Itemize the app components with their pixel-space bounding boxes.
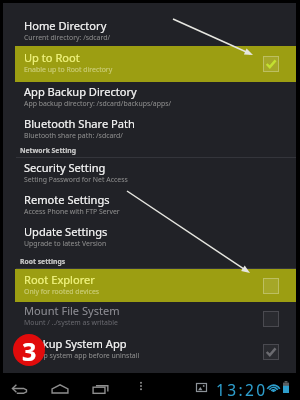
button[interactable]: Bluetooth Share Path xyxy=(15,113,296,144)
staticText: Only for rooted devices xyxy=(24,287,100,296)
button[interactable]: Security Setting xyxy=(15,158,296,189)
button[interactable]: Home xyxy=(48,377,72,400)
staticText: Enable up to Root directory xyxy=(24,65,113,74)
staticText: Access Phone with FTP Server xyxy=(24,207,120,216)
staticText: Mount / ../system as writable xyxy=(24,318,118,327)
button[interactable]: Mount File System xyxy=(15,302,296,335)
button[interactable]: Up to Root xyxy=(15,46,296,82)
staticText: Up to Root xyxy=(24,50,80,65)
button[interactable]: Remote Settings xyxy=(15,189,296,221)
button[interactable]: Root Explorer xyxy=(15,269,296,302)
staticText: Home Directory xyxy=(24,18,107,33)
staticText: App backup directory: /sdcard/backups/ap… xyxy=(24,99,172,108)
staticText: Root Explorer xyxy=(24,272,95,287)
button[interactable]: Update Settings xyxy=(15,221,296,255)
staticText: Setting Password for Net Access xyxy=(24,175,128,184)
button[interactable]: More options xyxy=(132,377,150,395)
staticText: Mount File System xyxy=(24,303,120,318)
staticText: Remote Settings xyxy=(24,192,110,207)
staticText: Security Setting xyxy=(24,160,106,175)
staticText: Current directory: /sdcard/ xyxy=(24,33,110,42)
staticText: Bluetooth Share Path xyxy=(24,116,135,131)
staticText: Backup System App xyxy=(24,336,127,351)
staticText: Backup system app before uninstall xyxy=(24,351,140,360)
button[interactable]: Back xyxy=(8,377,32,400)
staticText: 3 xyxy=(22,334,37,366)
button[interactable]: Backup System App xyxy=(15,335,296,368)
button[interactable]: Home Directory xyxy=(15,3,296,46)
staticText: Update Settings xyxy=(24,224,108,239)
button[interactable]: Recent apps xyxy=(89,377,113,400)
staticText: Upgrade to latest Version xyxy=(24,239,107,248)
staticText: Root settings xyxy=(20,257,66,266)
staticText: App Backup Directory xyxy=(24,84,137,99)
staticText: Bluetooth share path: /sdcard/ xyxy=(24,131,123,140)
button[interactable]: App Backup Directory xyxy=(15,82,296,113)
staticText: 13:20 xyxy=(216,379,268,400)
staticText: Network Setting xyxy=(20,146,77,155)
